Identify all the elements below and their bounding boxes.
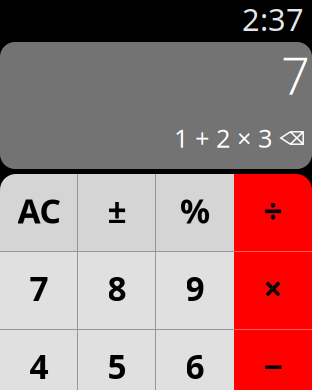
staticText: 9: [185, 266, 204, 310]
staticText: ÷: [263, 188, 282, 233]
staticText: 7: [281, 41, 310, 109]
staticText: 7: [29, 266, 48, 310]
button[interactable]: 6: [156, 329, 234, 390]
staticText: 5: [107, 344, 126, 388]
button[interactable]: 7: [0, 251, 78, 329]
button[interactable]: −: [234, 329, 312, 390]
staticText: 2:37: [242, 0, 304, 39]
button[interactable]: Delete: [280, 131, 304, 145]
staticText: 6: [185, 344, 204, 388]
staticText: ±: [107, 188, 126, 233]
staticText: 8: [107, 266, 126, 310]
button[interactable]: 8: [78, 251, 156, 329]
button[interactable]: 5: [78, 329, 156, 390]
button[interactable]: %: [156, 174, 234, 251]
staticText: AC: [17, 188, 60, 233]
button[interactable]: ±: [78, 174, 156, 251]
staticText: −: [263, 344, 282, 388]
staticText: %: [180, 188, 210, 233]
staticText: ×: [263, 266, 282, 310]
button[interactable]: ×: [234, 251, 312, 329]
button[interactable]: 4: [0, 329, 78, 390]
button[interactable]: ÷: [234, 174, 312, 251]
staticText: 4: [29, 344, 48, 388]
staticText: 1 + 2 × 3: [174, 121, 272, 155]
button[interactable]: AC: [0, 174, 78, 251]
button[interactable]: 9: [156, 251, 234, 329]
